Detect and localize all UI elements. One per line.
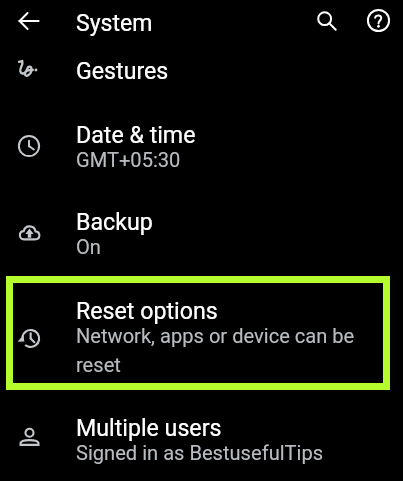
staticText: Date & time — [76, 121, 196, 148]
staticText: Signed in as BestusefulTips — [76, 441, 376, 465]
button[interactable]: Navigate up — [7, 0, 51, 43]
staticText: Gestures — [76, 57, 169, 84]
button[interactable] — [0, 284, 403, 392]
button[interactable] — [0, 106, 403, 186]
button[interactable] — [0, 397, 403, 477]
staticText: System — [76, 10, 153, 37]
staticText: GMT+05:30 — [76, 148, 376, 172]
button[interactable] — [0, 44, 403, 96]
staticText: Network, apps or device can be reset — [76, 324, 358, 377]
button[interactable]: Search — [304, 0, 348, 42]
button[interactable]: Help — [356, 0, 400, 42]
button[interactable] — [0, 192, 403, 272]
staticText: On — [76, 235, 376, 259]
staticText: Reset options — [76, 297, 218, 324]
staticText: Backup — [76, 208, 153, 235]
staticText: Multiple users — [76, 414, 222, 441]
